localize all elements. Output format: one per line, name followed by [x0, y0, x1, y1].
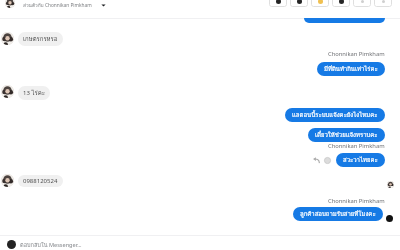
button[interactable]: เกษตรกรหรอ: [18, 32, 63, 46]
button[interactable]: เดี๋ยวให้ช่วยแจ้งทราบคะ: [308, 128, 385, 142]
staticText: 0988120524: [23, 177, 58, 185]
button[interactable]: มีที่ดินทำกินเท่าไร่คะ: [317, 62, 385, 76]
button[interactable]: Toolbar action: [269, 0, 287, 7]
staticText: Chonnikan Pimkham: [328, 197, 385, 205]
staticText: 13 ไร่คะ: [23, 88, 45, 98]
button[interactable]: Toolbar action: [311, 0, 329, 7]
button[interactable]: 0988120524: [18, 175, 63, 187]
button[interactable]: ลูกค้าสอบถามรับสายที่โมงคะ: [293, 207, 383, 221]
button[interactable]: Reply: [313, 157, 320, 164]
staticText: ตอบกลับใน Messenger...: [20, 241, 82, 250]
button[interactable]: Toolbar action: [374, 0, 392, 7]
button[interactable]: [304, 18, 385, 23]
staticText: สวะวาไทยคะ: [343, 155, 378, 165]
staticText: ส่วนตัวกับ Chonnikan Pimkham: [23, 1, 92, 9]
staticText: แลตอนนี้ระบบแจ้งคะยังไงไหมคะ: [292, 110, 378, 120]
staticText: ลูกค้าสอบถามรับสายที่โมงคะ: [300, 209, 376, 219]
staticText: Chonnikan Pimkham: [328, 142, 385, 150]
button[interactable]: Toolbar action: [353, 0, 371, 7]
staticText: เกษตรกรหรอ: [23, 34, 58, 44]
staticText: เดี๋ยวให้ช่วยแจ้งทราบคะ: [315, 130, 378, 140]
staticText: Chonnikan Pimkham: [328, 50, 385, 58]
staticText: มีที่ดินทำกินเท่าไร่คะ: [324, 64, 378, 74]
button[interactable]: 13 ไร่คะ: [18, 86, 50, 100]
button[interactable]: Toolbar action: [290, 0, 308, 7]
button[interactable]: แลตอนนี้ระบบแจ้งคะยังไงไหมคะ: [285, 108, 385, 122]
button[interactable]: ตอบกลับใน Messenger...: [7, 241, 400, 250]
button[interactable]: Toolbar action: [332, 0, 350, 7]
button[interactable]: สวะวาไทยคะ: [336, 153, 385, 167]
button[interactable]: React: [324, 157, 331, 164]
